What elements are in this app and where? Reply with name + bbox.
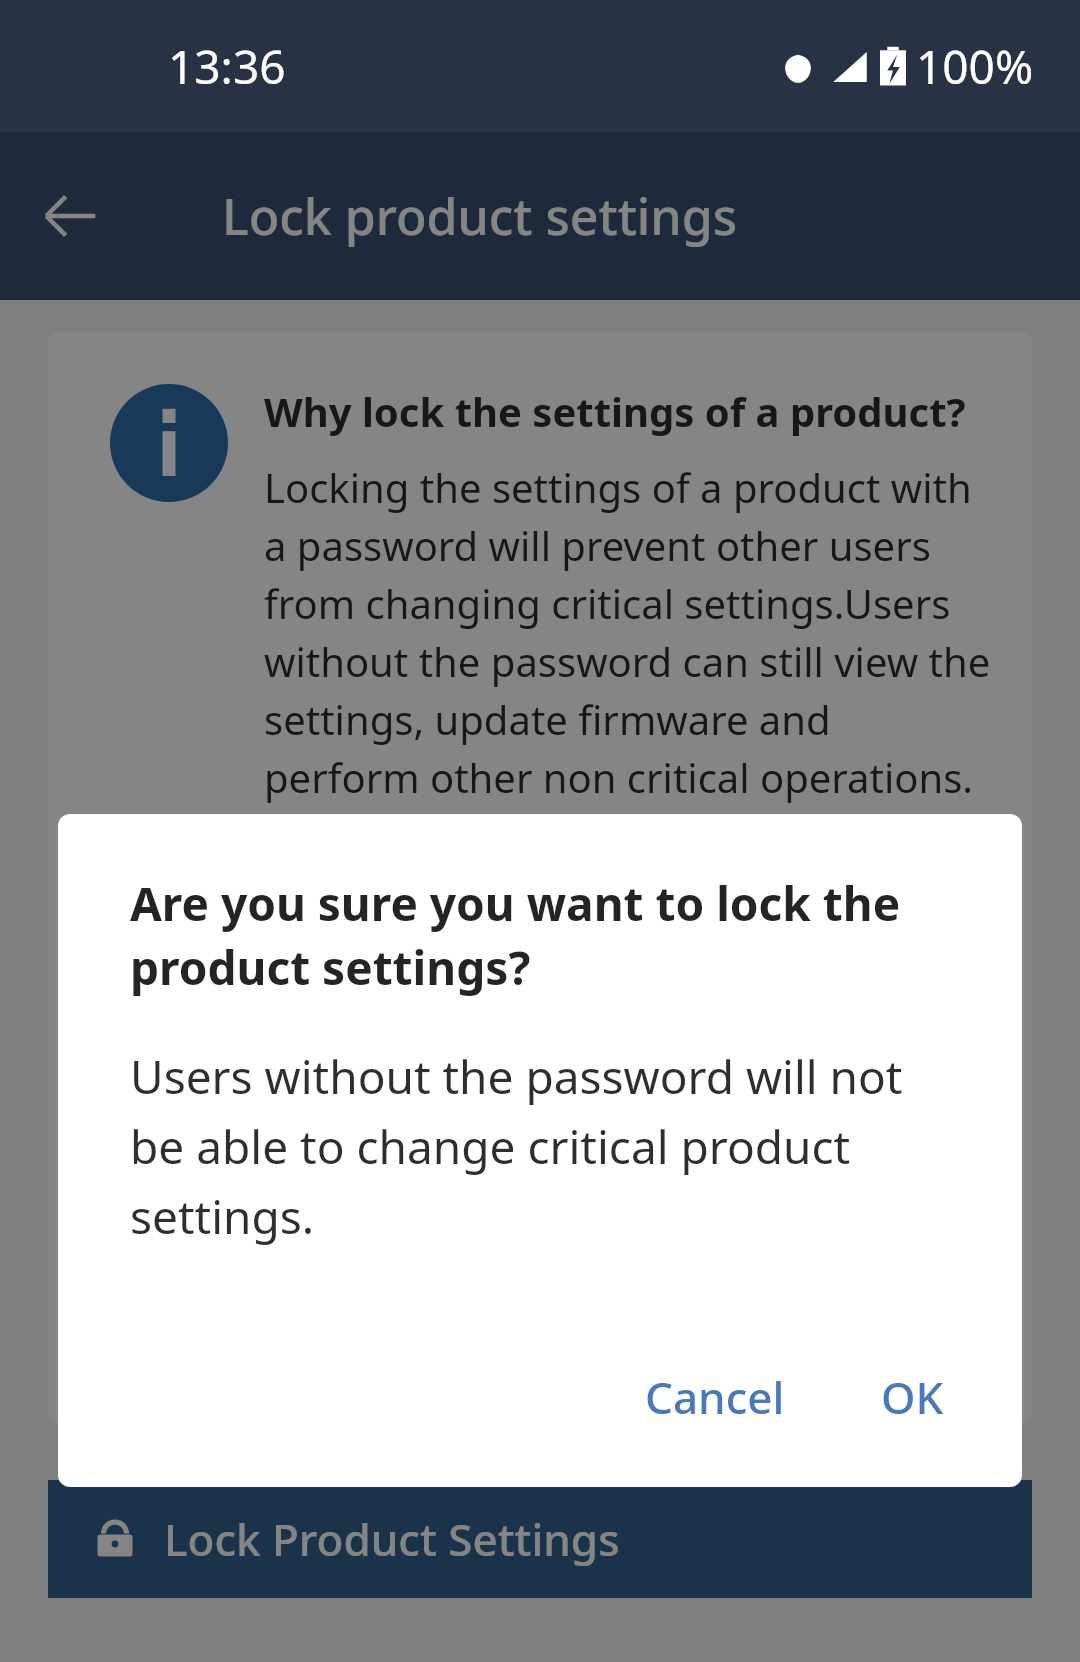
staticText: Lock product settings bbox=[222, 182, 737, 250]
button[interactable]: Lock Product Settings bbox=[48, 1480, 1032, 1598]
staticText: 100% bbox=[916, 35, 1034, 98]
staticText: OK bbox=[881, 1367, 944, 1427]
button[interactable]: OK bbox=[853, 1347, 972, 1447]
button[interactable]: Cancel bbox=[617, 1347, 813, 1447]
button[interactable]: Back bbox=[22, 168, 118, 264]
staticText: Cancel bbox=[645, 1367, 785, 1427]
staticText: Why lock the settings of a product? bbox=[264, 384, 966, 438]
staticText: Lock Product Settings bbox=[164, 1509, 620, 1569]
staticText: Are you sure you want to lock the produc… bbox=[130, 872, 950, 999]
staticText: 13:36 bbox=[168, 35, 286, 98]
staticText: Users without the password will not be a… bbox=[130, 1045, 950, 1247]
staticText: Locking the settings of a product with a… bbox=[264, 460, 992, 804]
